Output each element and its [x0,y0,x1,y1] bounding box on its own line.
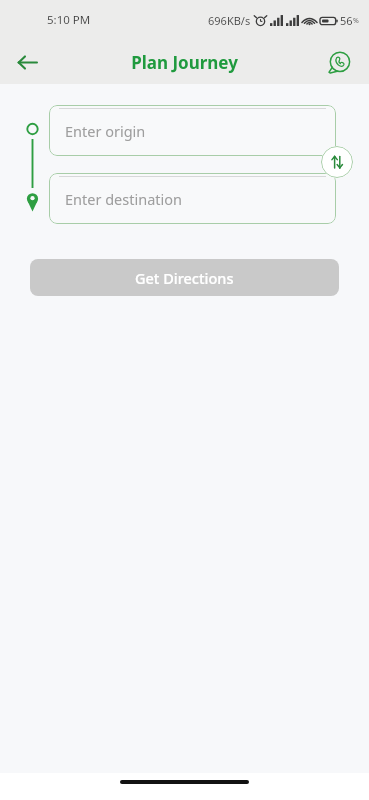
button[interactable]: Get Directions [30,259,339,296]
staticText: Enter destination [65,189,183,209]
staticText: 56 [340,13,353,28]
staticText: Enter origin [65,121,146,141]
staticText: 696KB/s [208,13,251,28]
button[interactable]: WhatsApp [324,47,354,77]
staticText: % [353,16,359,26]
staticText: 5:10 PM [47,12,91,28]
staticText: Plan Journey [131,51,238,74]
button[interactable]: Enter destination [49,173,336,224]
button[interactable]: Swap origin and destination [321,146,353,178]
button[interactable]: Back [10,45,44,79]
button[interactable]: Enter origin [49,105,336,156]
staticText: Get Directions [135,268,234,288]
